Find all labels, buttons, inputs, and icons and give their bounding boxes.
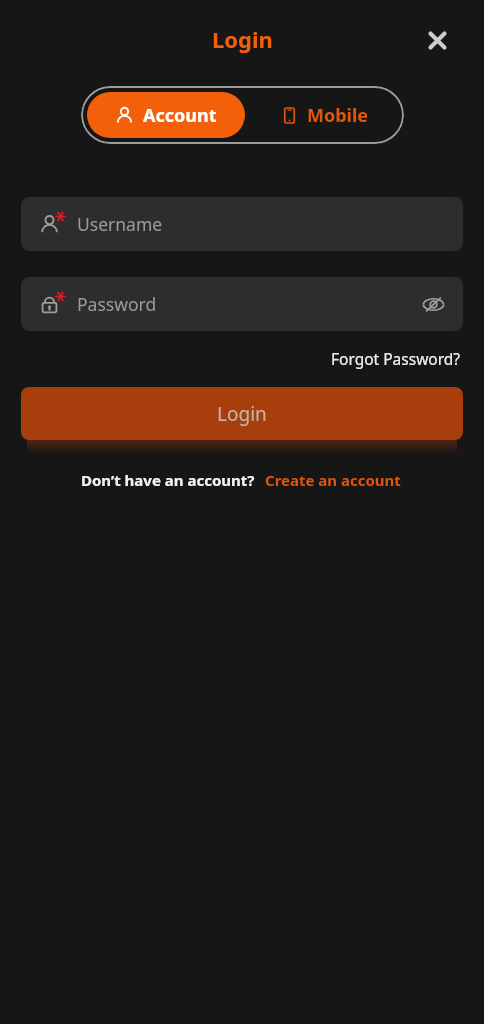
staticText: Login [212, 24, 273, 54]
staticText: Forgot Password? [331, 348, 461, 369]
button[interactable]: Mobile [245, 92, 404, 138]
staticText: Username [77, 212, 447, 236]
staticText: Password [77, 292, 411, 316]
button[interactable]: Forgot Password? [329, 345, 463, 372]
button[interactable]: Account [87, 92, 245, 138]
button[interactable]: Close [417, 20, 457, 60]
staticText: Account [143, 103, 217, 128]
staticText: Mobile [307, 103, 369, 128]
staticText: Create an account [265, 470, 401, 490]
staticText: Don’t have an account? [81, 470, 255, 490]
staticText: Login [217, 401, 267, 427]
button[interactable]: Password [21, 277, 463, 331]
button[interactable]: Login [21, 387, 463, 440]
button[interactable]: Create an account [263, 467, 403, 493]
button[interactable]: Username [21, 197, 463, 251]
button[interactable]: Show password [411, 282, 455, 326]
